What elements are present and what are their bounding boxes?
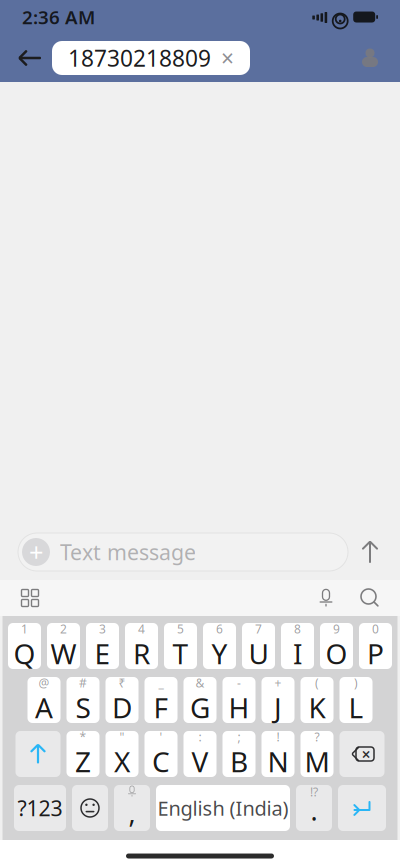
staticText: V (191, 743, 208, 780)
button[interactable]: Voice input (304, 581, 348, 615)
button[interactable]: ' (144, 731, 177, 777)
button[interactable] (14, 785, 66, 831)
staticText: H (228, 689, 249, 726)
staticText: T (172, 635, 188, 672)
button[interactable]: * (66, 731, 99, 777)
button[interactable]: ? (300, 731, 333, 777)
staticText: 5 (177, 621, 184, 637)
button[interactable]: Emoji (72, 785, 108, 831)
button[interactable]: 1 (8, 623, 41, 669)
staticText: 7 (255, 621, 262, 637)
staticText: ? (314, 729, 319, 745)
button[interactable]: # (66, 677, 99, 723)
staticText: Q (13, 635, 35, 672)
staticText: , (128, 795, 135, 830)
button[interactable]: ! (261, 731, 294, 777)
button[interactable]: " (105, 731, 138, 777)
staticText: ; (237, 729, 240, 745)
staticText: C (152, 743, 170, 780)
staticText: & (195, 675, 204, 691)
button[interactable]: @ (27, 677, 60, 723)
staticText: : (198, 729, 201, 745)
staticText: 1 (21, 621, 28, 637)
staticText: J (274, 689, 282, 726)
staticText: ! (276, 729, 279, 745)
button[interactable]: Back (8, 36, 52, 80)
staticText: 2:36 AM (22, 5, 95, 29)
button[interactable]: 3 (86, 623, 119, 669)
button[interactable]: Contact info (348, 36, 392, 80)
staticText: 4 (138, 621, 145, 637)
staticText: + (274, 675, 281, 691)
staticText: ₹ (118, 675, 125, 691)
staticText: P (367, 635, 384, 672)
staticText: A (35, 689, 53, 726)
staticText: O (325, 635, 347, 672)
staticText: L (348, 689, 363, 726)
button[interactable]: Add attachment (22, 535, 50, 569)
staticText: B (230, 743, 248, 780)
button[interactable]: ; (222, 731, 255, 777)
button[interactable]: Period (296, 785, 332, 831)
staticText: Text message (60, 538, 196, 566)
button[interactable]: 0 (359, 623, 392, 669)
staticText: M (304, 743, 329, 780)
button[interactable]: Return (338, 785, 386, 831)
staticText: 8 (294, 621, 301, 637)
staticText: ?123 (17, 794, 62, 822)
button[interactable]: Comma (114, 785, 150, 831)
staticText: ) (354, 675, 358, 691)
staticText: @ (38, 675, 49, 691)
button[interactable]: Delete (339, 731, 384, 777)
staticText: 3 (99, 621, 106, 637)
staticText: * (79, 729, 86, 745)
staticText: 2 (60, 621, 67, 637)
staticText: 18730218809 (68, 43, 211, 73)
button[interactable]: Shift (15, 731, 60, 777)
staticText: × (221, 43, 234, 73)
staticText: ( (315, 675, 319, 691)
staticText: W (50, 635, 76, 672)
staticText: G (190, 689, 210, 726)
staticText: I (293, 635, 302, 672)
staticText: Z (75, 743, 91, 780)
button[interactable]: _ (144, 677, 177, 723)
staticText: . (310, 793, 317, 828)
button[interactable]: ₹ (105, 677, 138, 723)
button[interactable]: English (India) (156, 785, 290, 831)
staticText: S (75, 689, 90, 726)
button[interactable]: 6 (203, 623, 236, 669)
staticText: Y (211, 635, 227, 672)
staticText: K (308, 689, 325, 726)
button[interactable]: 7 (242, 623, 275, 669)
button[interactable]: 18730218809 (52, 41, 250, 75)
staticText: E (94, 635, 110, 672)
button[interactable]: Keyboard options (8, 581, 52, 615)
staticText: English (India) (157, 795, 288, 821)
staticText: N (267, 743, 288, 780)
staticText: 6 (216, 621, 223, 637)
staticText: 0 (372, 621, 379, 637)
button[interactable]: - (222, 677, 255, 723)
button[interactable]: 9 (320, 623, 353, 669)
button[interactable]: : (183, 731, 216, 777)
button[interactable]: & (183, 677, 216, 723)
staticText: 9 (333, 621, 340, 637)
button[interactable]: Send (348, 530, 392, 574)
button[interactable]: 8 (281, 623, 314, 669)
button[interactable]: 2 (47, 623, 80, 669)
button[interactable]: 5 (164, 623, 197, 669)
button[interactable]: ( (300, 677, 333, 723)
staticText: !? (310, 784, 318, 800)
button[interactable]: 4 (125, 623, 158, 669)
button[interactable]: ) (339, 677, 372, 723)
staticText: X (114, 743, 130, 780)
staticText: R (133, 635, 150, 672)
button[interactable]: Search (348, 581, 392, 615)
staticText: + (29, 535, 43, 569)
staticText: # (79, 675, 87, 691)
button[interactable]: + (261, 677, 294, 723)
staticText: " (119, 729, 124, 745)
staticText: _ (158, 675, 163, 691)
staticText: - (237, 675, 241, 691)
